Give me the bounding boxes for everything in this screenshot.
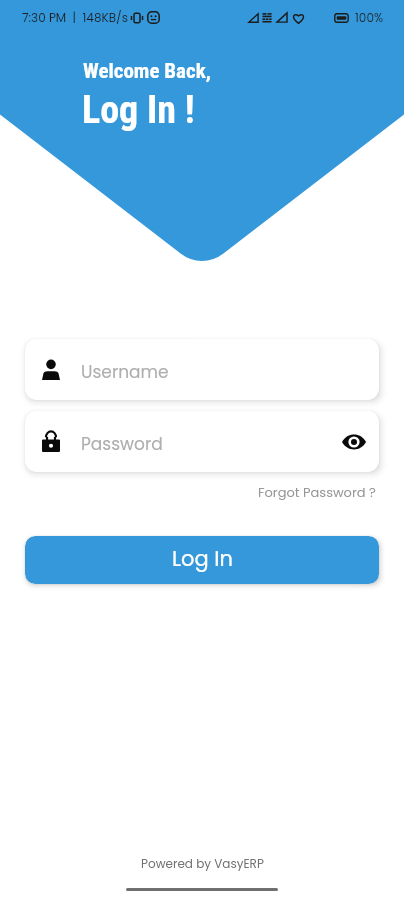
button[interactable]: Forgot Password ?: [255, 481, 379, 503]
staticText: 7:30 PM | 148KB/s: [22, 9, 128, 26]
button[interactable]: Password: [25, 411, 379, 472]
staticText: Powered by VasyERP: [141, 855, 264, 872]
staticText: 100%: [355, 9, 384, 26]
staticText: Forgot Password ?: [258, 483, 376, 501]
staticText: Username: [81, 360, 169, 384]
staticText: Log In: [172, 544, 233, 573]
staticText: Password: [81, 432, 163, 456]
button[interactable]: Log In: [25, 536, 379, 584]
button[interactable]: Show password: [339, 427, 369, 457]
staticText: Log In !: [82, 88, 195, 133]
button[interactable]: Username: [25, 339, 379, 400]
staticText: Welcome Back,: [83, 59, 211, 84]
